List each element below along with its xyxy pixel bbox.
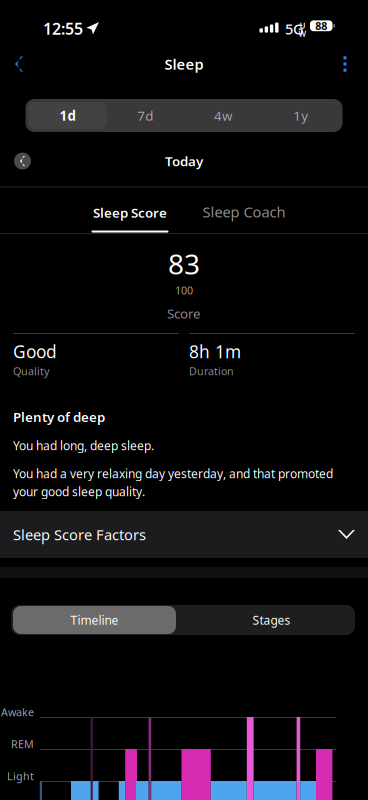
button[interactable]: Sleep Score Factors bbox=[0, 511, 368, 558]
staticText: Score bbox=[167, 304, 201, 322]
staticText: Quality bbox=[13, 364, 49, 378]
staticText: 83 bbox=[168, 245, 200, 282]
staticText: Plenty of deep bbox=[13, 408, 105, 426]
staticText: 100 bbox=[175, 283, 193, 297]
staticText: 88 bbox=[315, 19, 327, 33]
staticText: Sleep Score bbox=[93, 204, 167, 221]
staticText: 1d bbox=[59, 107, 75, 124]
staticText: Timeline bbox=[70, 612, 118, 628]
button[interactable]: 7d bbox=[106, 102, 184, 129]
button[interactable]: 1d bbox=[28, 102, 106, 129]
staticText: You had a very relaxing day yesterday, a… bbox=[13, 466, 333, 481]
staticText: 12:55 bbox=[43, 18, 83, 39]
staticText: Sleep Coach bbox=[202, 202, 285, 221]
staticText: 1y bbox=[293, 107, 308, 124]
staticText: You had long, deep sleep. bbox=[13, 438, 154, 454]
staticText: Today bbox=[165, 152, 203, 170]
button[interactable]: Sleep Score bbox=[73, 187, 187, 232]
staticText: REM bbox=[11, 737, 34, 751]
staticText: your good sleep quality. bbox=[13, 484, 145, 499]
button[interactable]: 1y bbox=[262, 102, 340, 129]
staticText: Duration bbox=[189, 364, 234, 378]
staticText: Sleep bbox=[164, 54, 203, 74]
staticText: 5G bbox=[285, 19, 304, 38]
button[interactable]: Sleep Coach bbox=[187, 187, 301, 232]
staticText: Awake bbox=[1, 705, 34, 719]
staticText: W bbox=[298, 28, 306, 39]
staticText: Good bbox=[13, 340, 57, 363]
button[interactable]: 4w bbox=[184, 102, 262, 129]
staticText: Light bbox=[7, 769, 34, 783]
button[interactable]: Previous day bbox=[14, 152, 31, 169]
staticText: 7d bbox=[137, 107, 153, 124]
button[interactable]: More options bbox=[326, 44, 364, 84]
button[interactable]: Timeline bbox=[13, 606, 176, 634]
staticText: 8h 1m bbox=[189, 340, 241, 363]
button[interactable]: Back bbox=[0, 44, 38, 84]
staticText: 4w bbox=[214, 107, 232, 124]
button[interactable]: Stages bbox=[190, 606, 353, 634]
staticText: U bbox=[299, 20, 305, 31]
staticText: Sleep Score Factors bbox=[13, 525, 146, 544]
staticText: Stages bbox=[252, 612, 290, 628]
